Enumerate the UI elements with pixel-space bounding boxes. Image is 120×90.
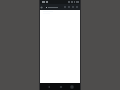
button[interactable]: Back <box>40 4 43 10</box>
button[interactable]: Home <box>57 85 64 88</box>
button[interactable]: Back <box>45 85 52 88</box>
button[interactable]: Toolbar action 2 <box>71 4 75 10</box>
button[interactable]: Toolbar action 1 <box>67 4 71 10</box>
button[interactable]: Recent apps <box>68 85 75 88</box>
button[interactable]: Toolbar action 3 <box>75 4 79 10</box>
button[interactable]: Toolbar action 0 <box>63 4 67 10</box>
button[interactable] <box>46 4 63 10</box>
